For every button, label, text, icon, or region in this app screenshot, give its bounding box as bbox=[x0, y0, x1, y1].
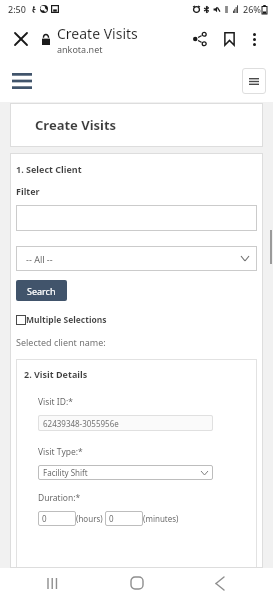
staticText: Multiple Selections bbox=[26, 314, 107, 326]
staticText: Facility Shift bbox=[43, 467, 88, 478]
button[interactable]: Menu bbox=[242, 68, 266, 94]
staticText: Visit Type:* bbox=[38, 446, 83, 458]
button[interactable]: Back bbox=[190, 568, 250, 598]
staticText: 62439348-3055956e bbox=[43, 418, 119, 429]
button[interactable]: 0 bbox=[105, 511, 143, 526]
staticText: 0 bbox=[109, 513, 114, 524]
button[interactable]: 0 bbox=[38, 511, 76, 526]
staticText: Create Visits bbox=[57, 24, 138, 43]
button[interactable]: Recent apps bbox=[23, 568, 83, 598]
button[interactable]: -- All -- bbox=[16, 246, 257, 271]
staticText: 1. Select Client bbox=[16, 163, 82, 175]
staticText: Search bbox=[27, 285, 56, 297]
button[interactable]: Share bbox=[188, 27, 212, 51]
staticText: -- All -- bbox=[26, 253, 53, 265]
staticText: Visit ID:* bbox=[38, 396, 73, 408]
staticText: Create Visits bbox=[35, 116, 117, 134]
button[interactable]: Navigation menu bbox=[12, 73, 32, 89]
staticText: 2. Visit Details bbox=[24, 368, 88, 380]
button[interactable]: More options bbox=[243, 28, 265, 50]
staticText: Selected client name: bbox=[16, 336, 106, 348]
staticText: Filter bbox=[16, 185, 40, 197]
button[interactable]: Close bbox=[8, 26, 34, 52]
button[interactable]: Bookmark bbox=[217, 27, 241, 51]
staticText: Duration:* bbox=[38, 492, 81, 504]
staticText: 2:50 bbox=[8, 3, 26, 15]
button[interactable]: Multiple Selections bbox=[16, 314, 107, 326]
staticText: 0 bbox=[42, 513, 47, 524]
button[interactable]: Search bbox=[16, 280, 67, 301]
button[interactable]: 62439348-3055956e bbox=[38, 415, 213, 431]
staticText: 26% bbox=[243, 3, 261, 15]
staticText: ankota.net bbox=[57, 43, 103, 55]
staticText: (hours) bbox=[76, 513, 103, 524]
button[interactable] bbox=[16, 205, 257, 231]
button[interactable]: Facility Shift bbox=[38, 465, 213, 480]
button[interactable]: Home bbox=[107, 568, 167, 598]
staticText: (minutes) bbox=[143, 513, 179, 524]
